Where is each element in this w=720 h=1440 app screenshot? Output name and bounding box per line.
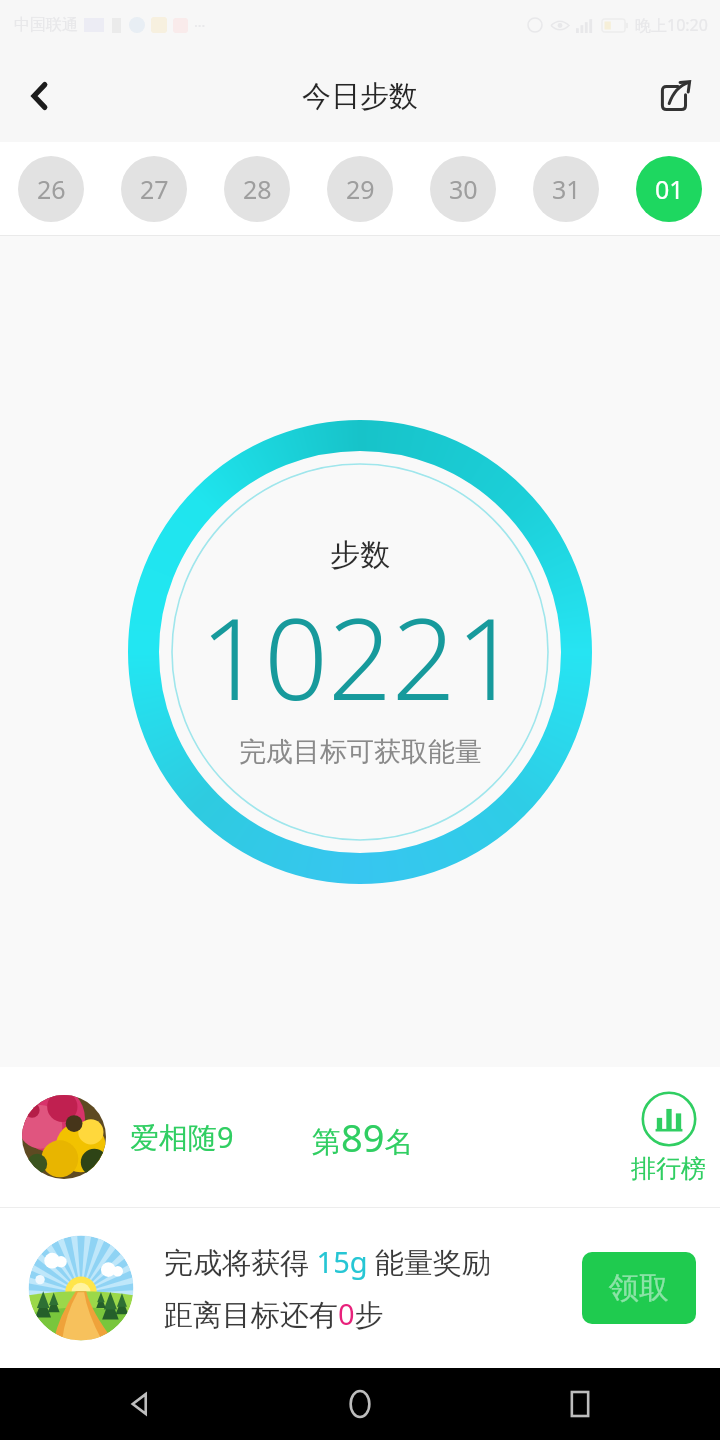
button[interactable]: Recent apps bbox=[552, 1376, 608, 1432]
button[interactable]: 30 bbox=[430, 156, 496, 222]
staticText: 晚上10:20 bbox=[635, 14, 708, 36]
staticText: 31 bbox=[552, 172, 581, 206]
staticText: 10221 bbox=[200, 580, 520, 733]
button[interactable]: Back bbox=[8, 64, 72, 128]
button[interactable]: 28 bbox=[224, 156, 290, 222]
button[interactable]: 01 bbox=[636, 156, 702, 222]
button[interactable]: 领取 bbox=[582, 1252, 696, 1324]
button[interactable]: 爱相随9 bbox=[0, 1067, 720, 1207]
button[interactable]: Home bbox=[332, 1376, 388, 1432]
staticText: 步数 bbox=[330, 536, 390, 574]
staticText: 中国联通 bbox=[14, 15, 78, 35]
staticText: 领取 bbox=[609, 1269, 669, 1307]
staticText: 第89名 bbox=[312, 1111, 414, 1163]
staticText: 完成目标可获取能量 bbox=[239, 735, 482, 769]
staticText: 排行榜 bbox=[631, 1153, 706, 1184]
button[interactable]: 26 bbox=[18, 156, 84, 222]
button[interactable]: 31 bbox=[533, 156, 599, 222]
button[interactable]: 29 bbox=[327, 156, 393, 222]
staticText: 距离目标还有0步 bbox=[164, 1294, 384, 1334]
button[interactable]: 27 bbox=[121, 156, 187, 222]
staticText: 30 bbox=[449, 172, 478, 206]
staticText: 01 bbox=[655, 172, 684, 206]
staticText: 28 bbox=[243, 172, 272, 206]
button[interactable]: Share bbox=[644, 64, 708, 128]
staticText: 完成将获得 15g 能量奖励 bbox=[164, 1242, 492, 1282]
button[interactable]: 排行榜 bbox=[631, 1091, 706, 1184]
staticText: 27 bbox=[140, 172, 169, 206]
staticText: 今日步数 bbox=[302, 78, 418, 115]
staticText: 爱相随9 bbox=[130, 1117, 234, 1157]
button[interactable]: Back bbox=[112, 1376, 168, 1432]
staticText: 29 bbox=[346, 172, 375, 206]
staticText: 26 bbox=[37, 172, 66, 206]
